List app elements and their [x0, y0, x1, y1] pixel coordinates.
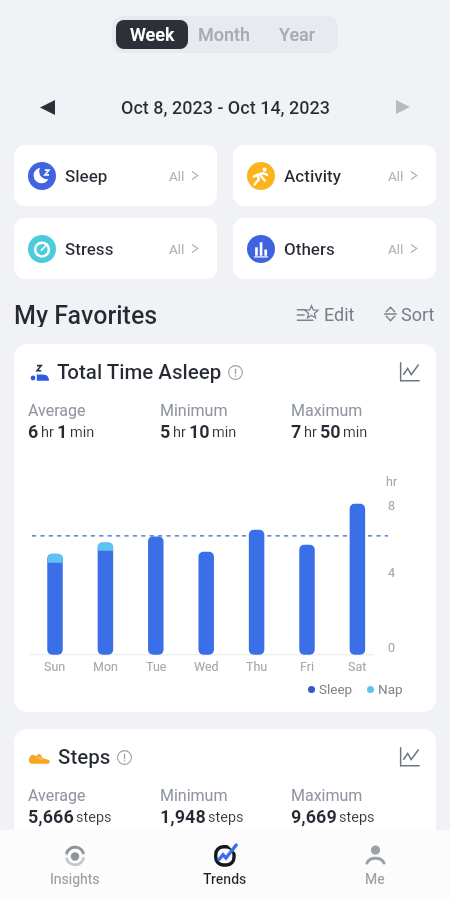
staticText: Activity — [284, 166, 388, 186]
staticText: min — [212, 424, 237, 441]
staticText: min — [343, 424, 368, 441]
staticText: Oct 8, 2023 - Oct 14, 2023 — [121, 97, 330, 118]
staticText: 0 — [388, 640, 396, 655]
staticText: 9,669 — [291, 806, 337, 827]
staticText: Wed — [194, 659, 219, 674]
staticText: Edit — [324, 304, 355, 324]
staticText: 5,666 — [28, 806, 74, 827]
staticText: Minimum — [160, 786, 228, 805]
staticText: steps — [208, 809, 244, 826]
button[interactable]: View chart — [396, 744, 422, 770]
staticText: hr — [173, 424, 186, 441]
staticText: Fri — [300, 659, 315, 674]
staticText: Year — [279, 24, 316, 45]
staticText: Sat — [348, 659, 367, 674]
staticText: 1 — [57, 421, 68, 442]
button[interactable]: Stress — [14, 218, 217, 279]
staticText: My Favorites — [14, 301, 294, 327]
staticText: Mon — [93, 659, 118, 674]
button[interactable]: Sleep — [14, 145, 217, 206]
staticText: Tue — [146, 659, 167, 674]
button[interactable]: Previous week — [30, 90, 64, 124]
staticText: 50 — [320, 421, 341, 442]
staticText: Sort — [401, 304, 435, 324]
staticText: Nap — [378, 681, 403, 697]
button[interactable]: Steps — [14, 729, 436, 869]
staticText: hr — [41, 424, 54, 441]
staticText: Sleep — [65, 166, 169, 186]
staticText: Average — [28, 786, 86, 805]
staticText: Sun — [44, 659, 66, 674]
staticText: Insights — [50, 871, 100, 887]
staticText: Stress — [65, 239, 169, 259]
staticText: Trends — [203, 871, 247, 887]
button[interactable]: Insights — [0, 836, 150, 895]
button[interactable]: Edit — [294, 301, 358, 327]
staticText: Month — [198, 24, 251, 45]
staticText: All — [169, 241, 185, 257]
button[interactable]: View chart — [396, 359, 422, 385]
staticText: Week — [130, 24, 175, 45]
staticText: 4 — [388, 565, 396, 580]
staticText: Average — [28, 401, 86, 420]
staticText: Others — [284, 239, 388, 259]
button[interactable]: Week — [116, 20, 188, 49]
staticText: steps — [339, 809, 375, 826]
staticText: 5 — [160, 421, 171, 442]
staticText: 10 — [189, 421, 210, 442]
staticText: 1,948 — [160, 806, 206, 827]
staticText: hr — [386, 474, 398, 489]
staticText: 7 — [291, 421, 302, 442]
staticText: hr — [304, 424, 317, 441]
button[interactable]: Trends — [150, 835, 300, 895]
staticText: Thu — [246, 659, 268, 674]
staticText: 8 — [388, 498, 396, 513]
button[interactable]: Others — [233, 218, 436, 279]
button[interactable]: Activity — [233, 145, 436, 206]
staticText: 6 — [28, 421, 39, 442]
staticText: min — [70, 424, 95, 441]
staticText: Maximum — [291, 786, 363, 805]
button[interactable]: Month — [188, 20, 261, 49]
staticText: All — [388, 241, 404, 257]
staticText: Me — [365, 871, 385, 887]
button[interactable]: Year — [261, 20, 334, 49]
staticText: Total Time Asleep — [57, 360, 222, 384]
staticText: All — [169, 168, 185, 184]
button[interactable]: Sort — [380, 301, 439, 327]
staticText: Minimum — [160, 401, 228, 420]
staticText: Sleep — [319, 681, 353, 697]
button[interactable]: Next week — [386, 90, 420, 124]
staticText: steps — [76, 809, 112, 826]
staticText: Maximum — [291, 401, 363, 420]
button[interactable]: Total Time Asleep — [14, 344, 436, 712]
staticText: All — [388, 168, 404, 184]
button[interactable]: Me — [300, 835, 450, 895]
staticText: Steps — [58, 745, 111, 769]
